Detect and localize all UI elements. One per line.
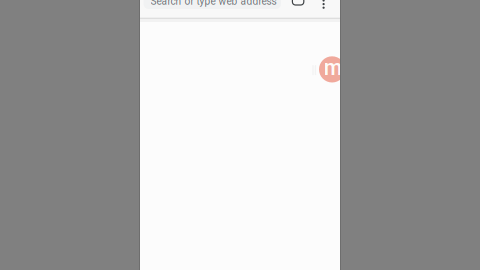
staticText: Search or type web address: [151, 0, 277, 7]
button[interactable]: Search or type web address: [143, 0, 281, 9]
staticText: m: [324, 55, 343, 80]
button[interactable]: Tabs: [292, 0, 304, 5]
button[interactable]: More options: [322, 0, 325, 9]
